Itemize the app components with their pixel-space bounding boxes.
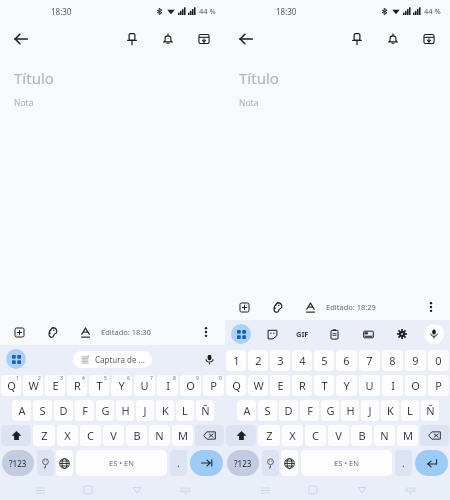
- button[interactable]: Home: [79, 481, 97, 499]
- button[interactable]: Clipboard: [322, 322, 346, 346]
- button[interactable]: V: [328, 425, 349, 446]
- button[interactable]: P: [428, 375, 449, 396]
- button[interactable]: Ñ: [421, 400, 439, 421]
- button[interactable]: I: [382, 375, 403, 396]
- button[interactable]: K: [381, 400, 399, 421]
- button[interactable]: U: [134, 375, 155, 396]
- button[interactable]: Shift: [1, 425, 31, 446]
- button[interactable]: Archive: [417, 27, 441, 51]
- button[interactable]: R: [292, 375, 312, 396]
- button[interactable]: O: [405, 375, 426, 396]
- button[interactable]: T: [314, 375, 334, 396]
- button[interactable]: 8: [382, 350, 403, 371]
- button[interactable]: D: [279, 400, 298, 421]
- button[interactable]: Back: [128, 481, 146, 499]
- button[interactable]: V: [103, 425, 124, 446]
- button[interactable]: C: [305, 425, 326, 446]
- button[interactable]: A: [12, 400, 31, 421]
- button[interactable]: Recents: [31, 481, 49, 499]
- button[interactable]: Back: [353, 481, 371, 499]
- button[interactable]: ?123: [227, 450, 259, 476]
- button[interactable]: Add: [232, 295, 256, 319]
- button[interactable]: 2: [248, 350, 268, 371]
- button[interactable]: 5: [314, 350, 334, 371]
- button[interactable]: Home: [304, 481, 322, 499]
- button[interactable]: N: [374, 425, 395, 446]
- button[interactable]: Voice input: [199, 349, 219, 369]
- button[interactable]: G: [321, 400, 339, 421]
- button[interactable]: N: [149, 425, 170, 446]
- button[interactable]: Text format: [298, 295, 322, 319]
- button[interactable]: Settings: [390, 322, 414, 346]
- button[interactable]: T: [89, 375, 109, 396]
- button[interactable]: 7: [359, 350, 380, 371]
- button[interactable]: ES • EN: [301, 450, 392, 476]
- button[interactable]: P: [203, 375, 224, 396]
- button[interactable]: Reminder: [156, 27, 180, 51]
- button[interactable]: H: [341, 400, 359, 421]
- button[interactable]: Reminder: [381, 27, 405, 51]
- button[interactable]: Backspace: [195, 425, 224, 446]
- button[interactable]: Change language: [56, 450, 73, 476]
- button[interactable]: X: [282, 425, 303, 446]
- button[interactable]: D: [54, 400, 73, 421]
- button[interactable]: Captura de ...: [73, 351, 152, 368]
- button[interactable]: H: [116, 400, 134, 421]
- button[interactable]: A: [237, 400, 256, 421]
- button[interactable]: O: [180, 375, 201, 396]
- button[interactable]: K: [156, 400, 174, 421]
- button[interactable]: E: [45, 375, 65, 396]
- button[interactable]: ?123: [2, 450, 34, 476]
- button[interactable]: Back: [9, 27, 33, 51]
- button[interactable]: E: [270, 375, 290, 396]
- button[interactable]: L: [176, 400, 194, 421]
- button[interactable]: Stickers: [260, 322, 284, 346]
- button[interactable]: B: [126, 425, 147, 446]
- button[interactable]: ES • EN: [76, 450, 167, 476]
- button[interactable]: Y: [111, 375, 132, 396]
- button[interactable]: Emoji and comma: [262, 450, 279, 476]
- button[interactable]: X: [57, 425, 78, 446]
- button[interactable]: GIF: [293, 326, 312, 342]
- button[interactable]: Toolbar: [6, 349, 26, 369]
- button[interactable]: 9: [405, 350, 426, 371]
- button[interactable]: 3: [270, 350, 290, 371]
- button[interactable]: Pin: [120, 27, 144, 51]
- button[interactable]: .: [170, 450, 187, 476]
- button[interactable]: Emoji and comma: [37, 450, 54, 476]
- button[interactable]: Layout: [356, 322, 380, 346]
- button[interactable]: S: [258, 400, 277, 421]
- button[interactable]: J: [361, 400, 379, 421]
- button[interactable]: Palette: [40, 320, 64, 344]
- button[interactable]: Next field: [190, 450, 223, 476]
- button[interactable]: G: [96, 400, 114, 421]
- button[interactable]: J: [136, 400, 154, 421]
- button[interactable]: Pin: [345, 27, 369, 51]
- button[interactable]: Add: [7, 320, 31, 344]
- button[interactable]: 6: [336, 350, 357, 371]
- button[interactable]: M: [397, 425, 418, 446]
- button[interactable]: Back: [234, 27, 258, 51]
- button[interactable]: Palette: [265, 295, 289, 319]
- button[interactable]: Hide keyboard: [401, 481, 419, 499]
- button[interactable]: Archive: [192, 27, 216, 51]
- button[interactable]: W: [23, 375, 43, 396]
- button[interactable]: Change language: [281, 450, 298, 476]
- button[interactable]: Q: [1, 375, 21, 396]
- button[interactable]: F: [75, 400, 94, 421]
- button[interactable]: Ñ: [196, 400, 214, 421]
- button[interactable]: 0: [428, 350, 449, 371]
- button[interactable]: More options: [419, 295, 443, 319]
- button[interactable]: B: [351, 425, 372, 446]
- button[interactable]: More options: [194, 320, 218, 344]
- button[interactable]: S: [33, 400, 52, 421]
- button[interactable]: Hide keyboard: [176, 481, 194, 499]
- button[interactable]: Shift: [226, 425, 256, 446]
- button[interactable]: W: [248, 375, 268, 396]
- button[interactable]: U: [359, 375, 380, 396]
- button[interactable]: F: [300, 400, 319, 421]
- button[interactable]: Toolbar: [231, 324, 251, 344]
- button[interactable]: Enter: [415, 450, 448, 476]
- button[interactable]: Y: [336, 375, 357, 396]
- button[interactable]: .: [395, 450, 412, 476]
